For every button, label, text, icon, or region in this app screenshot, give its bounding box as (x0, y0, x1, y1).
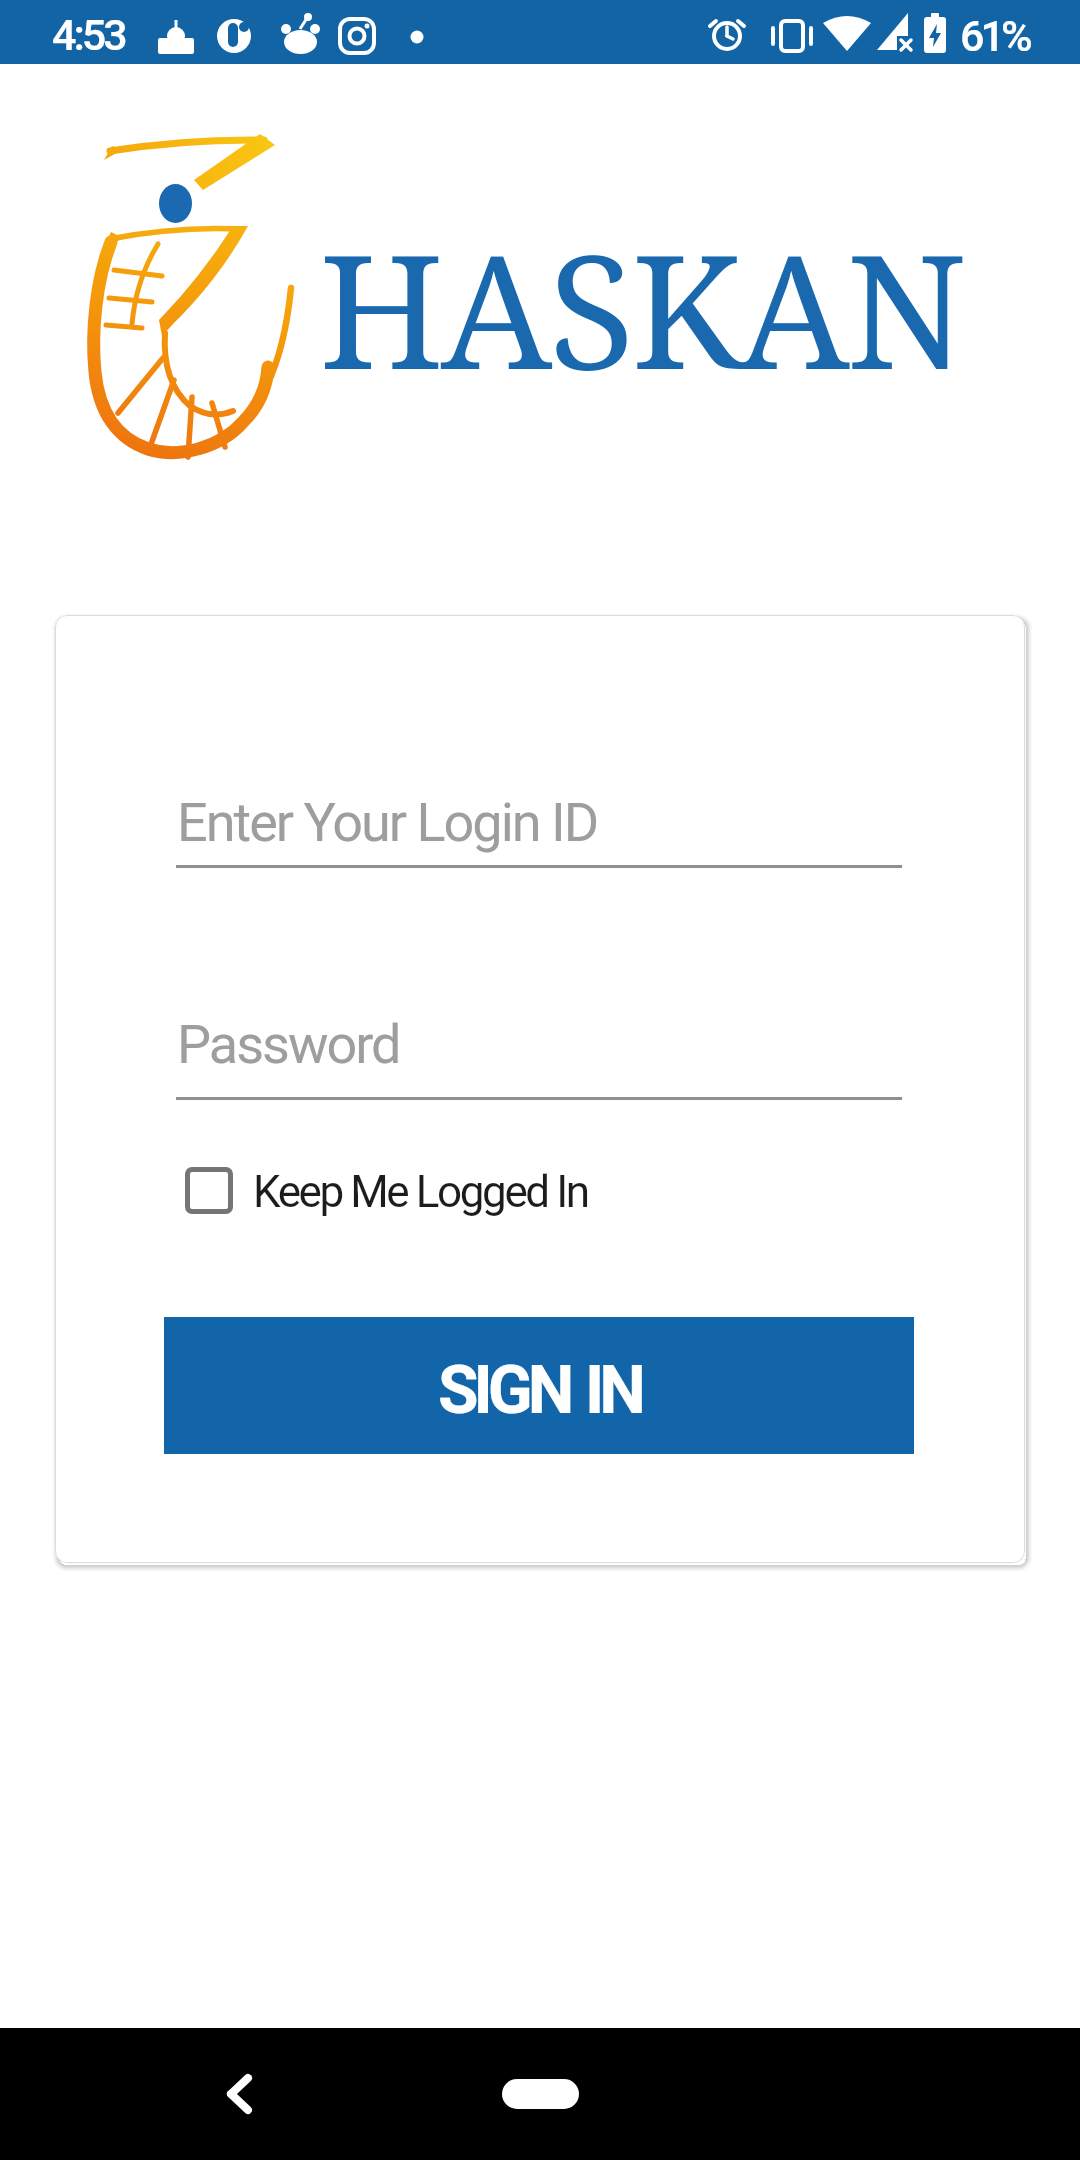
button[interactable] (195, 2053, 285, 2135)
staticText: Keep Me Logged In (253, 1166, 588, 1218)
button[interactable] (502, 2079, 579, 2109)
button[interactable] (185, 1160, 655, 1222)
staticText: 61% (960, 11, 1029, 61)
staticText: HASKAN (319, 200, 964, 415)
staticText: SIGN (438, 1352, 570, 1429)
button[interactable] (176, 775, 902, 870)
staticText: Password (177, 1013, 400, 1076)
staticText: Enter Your Login ID (177, 791, 598, 854)
button[interactable] (185, 1167, 233, 1214)
staticText: 4:53 (52, 10, 125, 60)
staticText: IN (585, 1352, 641, 1429)
button[interactable] (176, 997, 902, 1092)
button[interactable]: SIGN (164, 1317, 914, 1454)
